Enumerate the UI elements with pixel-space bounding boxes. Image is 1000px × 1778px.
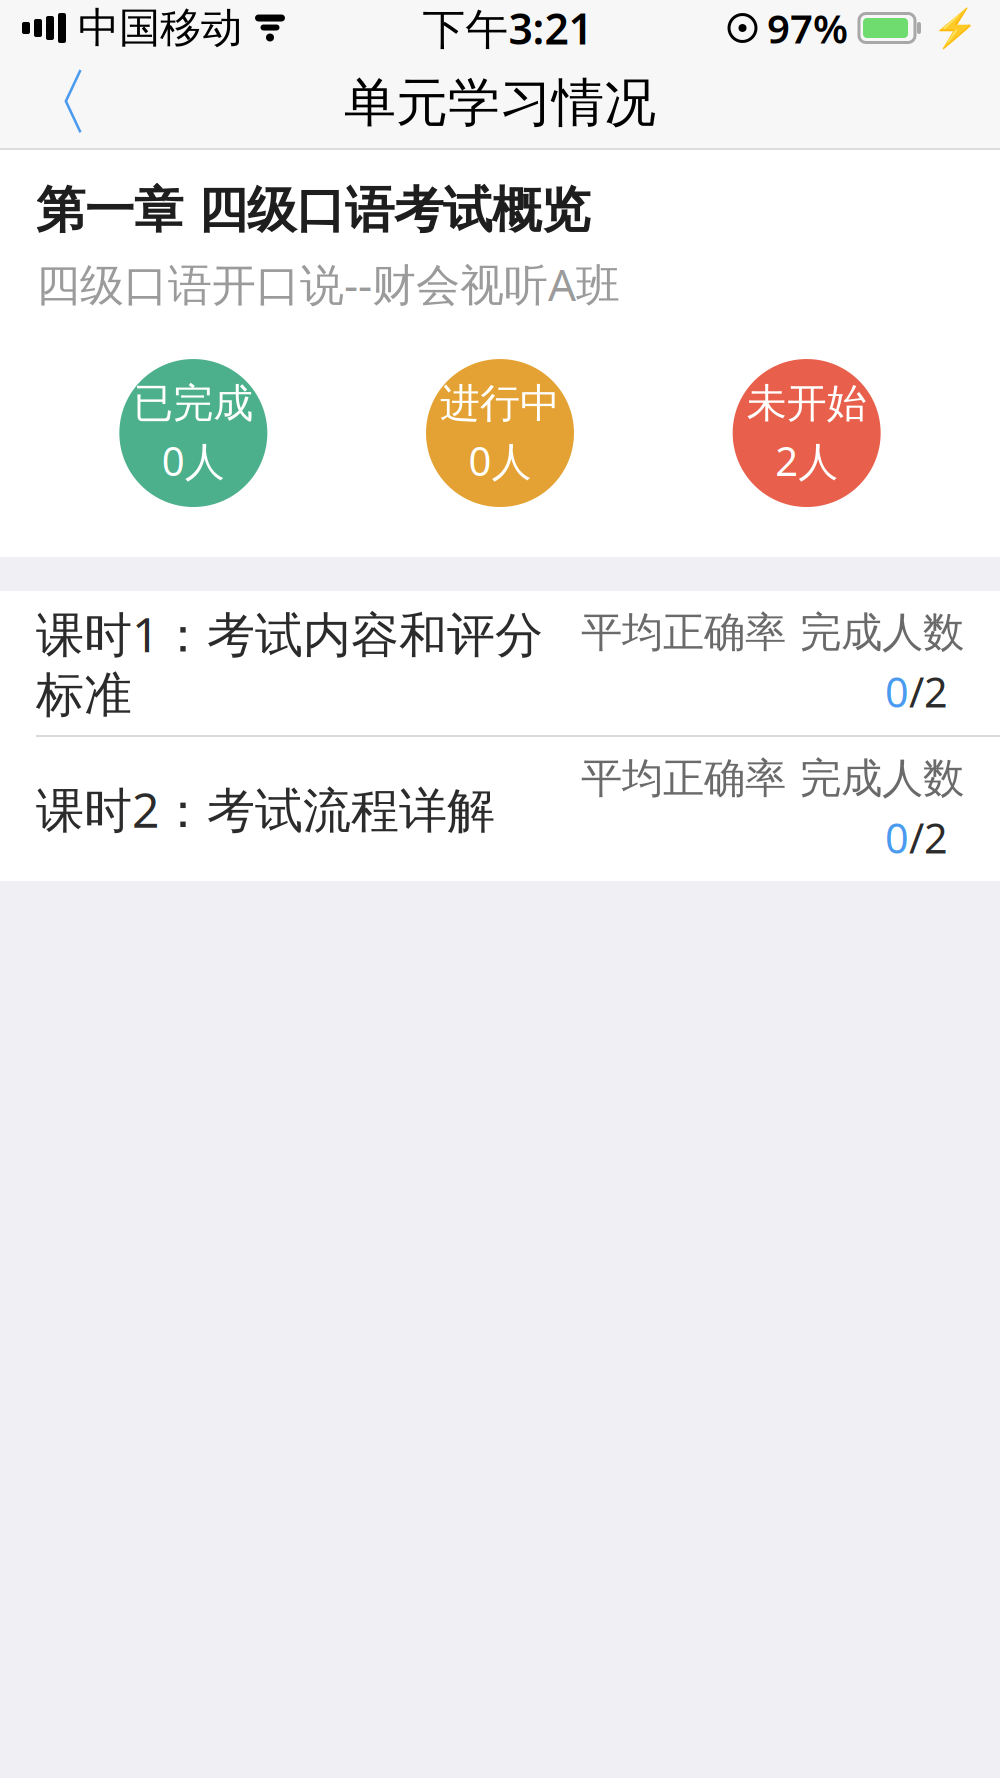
staticText: /2 — [909, 810, 948, 865]
button[interactable]: 返回 — [0, 56, 110, 150]
staticText: 进行中 — [440, 379, 560, 428]
staticText: ⚡ — [932, 7, 978, 49]
staticText: 完成人数 — [800, 753, 964, 804]
staticText: /2 — [909, 664, 948, 719]
staticText: 0人 — [468, 434, 531, 487]
staticText: 中国移动 — [78, 3, 242, 53]
staticText: 下午3:21 — [422, 0, 592, 56]
button[interactable]: 课时1：考试内容和评分标准 — [0, 591, 1000, 735]
staticText: 0 — [885, 810, 909, 865]
staticText: 0人 — [162, 434, 225, 487]
staticText: 未开始 — [747, 379, 867, 428]
staticText: 0 — [885, 664, 909, 719]
button[interactable]: 课时2：考试流程详解 — [0, 737, 1000, 881]
staticText: 已完成 — [133, 379, 253, 428]
staticText: 课时2：考试流程详解 — [36, 777, 495, 841]
staticText: 四级口语开口说--财会视听A班 — [36, 255, 620, 313]
staticText: 单元学习情况 — [344, 71, 656, 135]
staticText: 平均正确率 — [581, 753, 786, 804]
staticText: 课时1：考试内容和评分标准 — [36, 602, 543, 724]
staticText: 完成人数 — [800, 607, 964, 658]
staticText: 第一章 四级口语考试概览 — [36, 180, 590, 241]
staticText: 2人 — [775, 434, 838, 487]
staticText: 〈 — [19, 59, 91, 147]
staticText: 97% — [767, 1, 848, 54]
staticText: 平均正确率 — [581, 607, 786, 658]
